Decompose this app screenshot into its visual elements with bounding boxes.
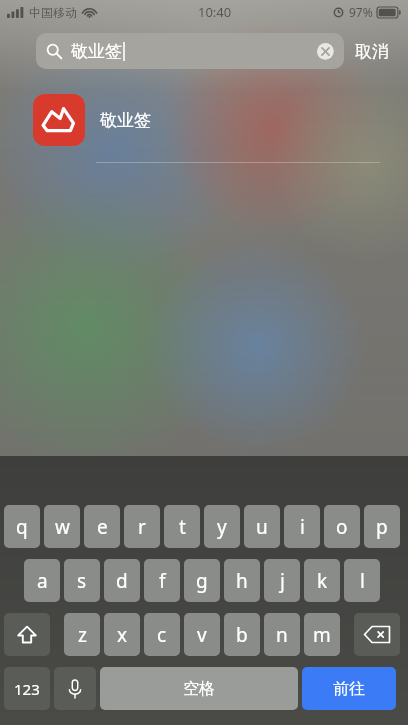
staticText: r: [138, 514, 146, 540]
button[interactable]: 前往: [302, 667, 396, 710]
button[interactable]: g: [184, 559, 220, 602]
staticText: k: [317, 568, 328, 594]
staticText: h: [236, 568, 248, 594]
staticText: f: [159, 568, 166, 594]
button[interactable]: n: [264, 613, 300, 656]
button[interactable]: x: [104, 613, 140, 656]
staticText: 10:40: [198, 3, 232, 21]
button[interactable]: c: [144, 613, 180, 656]
button[interactable]: f: [144, 559, 180, 602]
staticText: c: [157, 622, 167, 648]
staticText: j: [280, 568, 285, 594]
staticText: 敬业签: [71, 41, 122, 62]
staticText: v: [197, 622, 207, 648]
button[interactable]: 敬业签: [0, 78, 408, 162]
button[interactable]: Clear text: [316, 42, 334, 60]
staticText: a: [37, 568, 48, 594]
button[interactable]: d: [104, 559, 140, 602]
staticText: m: [313, 622, 331, 648]
button[interactable]: 123: [4, 667, 50, 710]
button[interactable]: k: [304, 559, 340, 602]
button[interactable]: w: [44, 505, 80, 548]
staticText: q: [16, 514, 28, 540]
button[interactable]: s: [64, 559, 100, 602]
staticText: n: [276, 622, 288, 648]
staticText: 前往: [333, 679, 365, 699]
staticText: b: [236, 622, 248, 648]
staticText: z: [78, 622, 87, 648]
staticText: 敬业签: [100, 110, 151, 131]
staticText: w: [55, 514, 70, 540]
button[interactable]: 空格: [100, 667, 298, 710]
button[interactable]: j: [264, 559, 300, 602]
button[interactable]: l: [344, 559, 380, 602]
staticText: i: [300, 514, 305, 540]
staticText: t: [179, 514, 186, 540]
button[interactable]: p: [364, 505, 400, 548]
button[interactable]: r: [124, 505, 160, 548]
button[interactable]: t: [164, 505, 200, 548]
button[interactable]: 取消: [344, 33, 400, 69]
button[interactable]: i: [284, 505, 320, 548]
staticText: e: [97, 514, 108, 540]
button[interactable]: 敬业签: [36, 33, 344, 69]
staticText: l: [360, 568, 365, 594]
button[interactable]: z: [64, 613, 100, 656]
button[interactable]: o: [324, 505, 360, 548]
button[interactable]: Dictation: [54, 667, 96, 710]
staticText: u: [256, 514, 268, 540]
staticText: d: [116, 568, 128, 594]
button[interactable]: e: [84, 505, 120, 548]
staticText: o: [336, 514, 348, 540]
button[interactable]: b: [224, 613, 260, 656]
button[interactable]: h: [224, 559, 260, 602]
button[interactable]: q: [4, 505, 40, 548]
staticText: 123: [14, 679, 40, 699]
staticText: s: [77, 568, 87, 594]
staticText: y: [217, 514, 227, 540]
button[interactable]: u: [244, 505, 280, 548]
staticText: 中国移动: [29, 5, 77, 20]
button[interactable]: y: [204, 505, 240, 548]
button[interactable]: Shift: [4, 613, 50, 656]
staticText: p: [376, 514, 388, 540]
staticText: 空格: [183, 679, 215, 699]
staticText: x: [117, 622, 128, 648]
staticText: 取消: [355, 41, 389, 62]
button[interactable]: a: [24, 559, 60, 602]
button[interactable]: v: [184, 613, 220, 656]
staticText: g: [196, 568, 208, 594]
button[interactable]: Backspace: [354, 613, 400, 656]
button[interactable]: m: [304, 613, 340, 656]
staticText: 97%: [349, 4, 373, 20]
